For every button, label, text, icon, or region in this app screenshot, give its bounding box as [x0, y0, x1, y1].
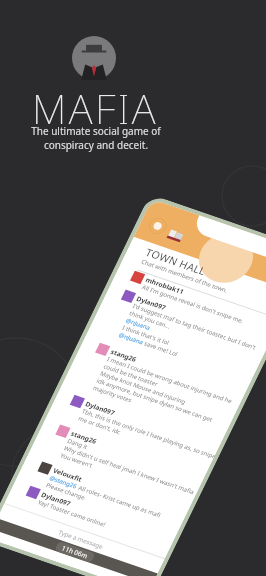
staticText: I think that's it lol — [119, 310, 173, 361]
staticText: Type a message — [55, 514, 107, 564]
staticText: Chat with members of the town. — [138, 232, 231, 321]
button[interactable]: Dylan097 — [19, 441, 180, 576]
staticText: I mean I could be wrong about injuring a… — [104, 317, 236, 443]
staticText: @nJuana — [115, 324, 147, 353]
staticText: Velouxfit — [49, 457, 86, 492]
staticText: Dylan097 — [133, 285, 170, 321]
button[interactable]: Type a message — [0, 455, 169, 576]
staticText: The ultimate social game of conspiracy a… — [0, 124, 192, 152]
staticText: majority votes — [90, 372, 136, 416]
button[interactable]: stang26 — [66, 298, 258, 481]
staticText: stang26 — [67, 421, 101, 454]
staticText: Yay! Toaster came online! — [34, 478, 110, 550]
button[interactable]: Dylan097 — [57, 351, 226, 512]
staticText: Tbh, this is the only role I hate playin… — [78, 367, 218, 500]
staticText: stang26 — [107, 339, 141, 372]
staticText: @nJuana — [122, 309, 154, 339]
staticText: MAFIA — [0, 80, 190, 136]
staticText: mhroblak11 — [142, 264, 188, 308]
button[interactable]: Spectate — [142, 212, 173, 240]
staticText: could be the toaster — [100, 346, 162, 405]
staticText: All roles- Krist came up as mafi — [73, 458, 164, 545]
staticText: Dylan097 — [82, 390, 119, 426]
button[interactable]: Dylan097 — [92, 245, 266, 428]
staticText: Dang it — [64, 431, 91, 457]
staticText: me or don't, idc — [75, 402, 124, 449]
staticText: Why didn't u self heal jmah I knew I was… — [60, 405, 197, 535]
staticText: All I'm gonna reveal is don't snipe me. — [139, 253, 247, 356]
staticText: 11h 06m — [58, 536, 92, 568]
staticText: idk anymore, but snipe dylan so we can g… — [93, 342, 216, 459]
staticText: @stang26 — [46, 466, 81, 499]
staticText: save me! Lol — [139, 328, 182, 369]
button[interactable]: mhroblak11 — [123, 226, 266, 380]
staticText: TOWN HALL — [140, 227, 212, 296]
staticText: Please change — [42, 469, 89, 514]
staticText: I'd suggest maf to tag their toaster, bu… — [129, 265, 260, 389]
staticText: think you can... — [126, 297, 174, 343]
staticText: You weren't — [57, 442, 97, 480]
button[interactable]: stang26 — [37, 380, 214, 548]
button[interactable]: Velouxfit — [25, 417, 194, 576]
staticText: Dylan097 — [37, 481, 75, 517]
staticText: Maybe knot Mouse and injuring — [97, 344, 189, 432]
